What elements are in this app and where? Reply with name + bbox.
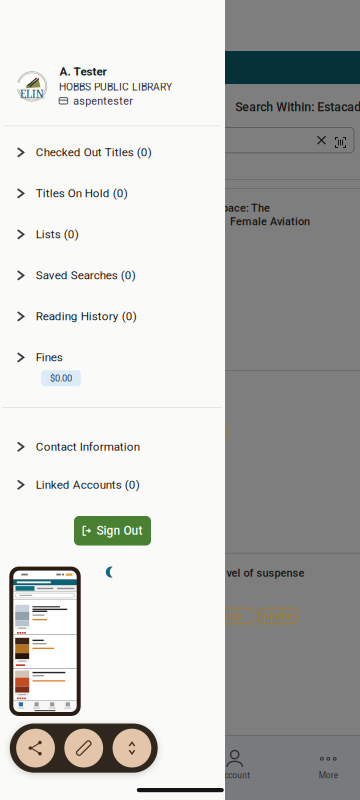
button[interactable]: Contact Information [0, 428, 225, 466]
staticText: ELIN [20, 87, 44, 101]
staticText: Female Aviation [230, 215, 310, 228]
staticText: Linked Accounts (0) [36, 478, 140, 492]
staticText: pace: The [222, 201, 270, 214]
staticText: Contact Information [36, 440, 140, 454]
staticText: HOBBS PUBLIC LIBRARY [59, 81, 172, 93]
staticText: Kindle [262, 610, 293, 622]
staticText: Titles On Hold (0) [36, 187, 128, 200]
button[interactable]: Sign Out [74, 516, 151, 545]
button[interactable]: Lists (0) [0, 214, 225, 255]
staticText: Account [219, 770, 250, 780]
button[interactable]: Fines [0, 337, 225, 378]
staticText: Sign Out [96, 524, 142, 538]
staticText: Fines [36, 351, 63, 364]
button[interactable]: More [288, 741, 360, 787]
button[interactable]: Markup [64, 729, 103, 767]
button[interactable]: Linked Accounts (0) [0, 466, 225, 504]
button[interactable]: Reading History (0) [0, 296, 225, 337]
staticText: Lists (0) [36, 228, 79, 241]
staticText: Saved Searches (0) [36, 269, 136, 282]
staticText: A. Tester [60, 65, 107, 78]
button[interactable]: Checked Out Titles (0) [0, 132, 225, 173]
staticText: More [319, 770, 338, 780]
button[interactable]: Reorder [112, 729, 151, 767]
staticText: Reading History (0) [36, 310, 137, 323]
staticText: Search Within: Estacado [235, 100, 360, 114]
button[interactable]: Saved Searches (0) [0, 255, 225, 296]
staticText: Book [219, 610, 242, 622]
button[interactable]: Share [16, 729, 55, 767]
staticText: aspentester [73, 95, 133, 107]
staticText: $0.00 [50, 373, 72, 384]
staticText: vel of suspense [227, 566, 305, 579]
staticText: Checked Out Titles (0) [36, 146, 152, 159]
button[interactable]: Titles On Hold (0) [0, 173, 225, 214]
button[interactable]: Account [195, 741, 275, 787]
